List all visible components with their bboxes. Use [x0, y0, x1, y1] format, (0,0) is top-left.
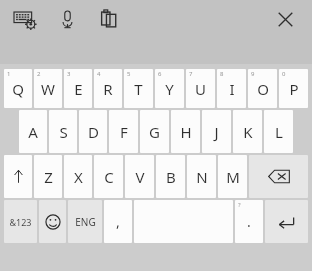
button[interactable]: N — [187, 155, 216, 198]
button[interactable]: &123 — [4, 200, 37, 243]
button[interactable]: Voice input — [54, 7, 80, 31]
staticText: C — [104, 167, 114, 187]
staticText: 4 — [97, 70, 101, 78]
staticText: ENG — [75, 215, 96, 229]
button[interactable]: Enter — [265, 200, 308, 243]
button[interactable]: M — [218, 155, 247, 198]
button[interactable]: Clipboard — [96, 6, 122, 30]
staticText: K — [243, 122, 253, 142]
staticText: 2 — [37, 70, 41, 78]
staticText: . — [247, 212, 251, 231]
staticText: V — [135, 167, 145, 187]
button[interactable]: W — [34, 69, 62, 108]
staticText: L — [275, 122, 283, 142]
staticText: M — [226, 167, 240, 187]
staticText: J — [214, 122, 219, 142]
button[interactable]: O — [248, 69, 277, 108]
button[interactable]: Keyboard settings — [10, 7, 38, 31]
staticText: Q — [12, 79, 24, 99]
button[interactable]: . — [235, 200, 263, 243]
staticText: ? — [238, 201, 241, 209]
staticText: Y — [165, 79, 174, 99]
staticText: 5 — [127, 70, 131, 78]
button[interactable]: I — [217, 69, 246, 108]
staticText: E — [74, 79, 83, 99]
button[interactable]: Shift — [4, 155, 32, 198]
button[interactable]: Emoji — [39, 200, 66, 243]
button[interactable]: P — [279, 69, 308, 108]
staticText: W — [41, 79, 55, 99]
staticText: Z — [44, 167, 53, 187]
staticText: T — [134, 79, 143, 99]
staticText: 1 — [7, 70, 11, 78]
button[interactable]: , — [104, 200, 132, 243]
button[interactable]: E — [64, 69, 92, 108]
button[interactable]: J — [202, 110, 231, 153]
staticText: S — [59, 122, 68, 142]
staticText: 0 — [282, 70, 286, 78]
button[interactable]: Z — [34, 155, 62, 198]
staticText: &123 — [9, 216, 32, 228]
button[interactable]: T — [124, 69, 153, 108]
button[interactable]: Y — [155, 69, 184, 108]
button[interactable]: B — [156, 155, 185, 198]
button[interactable]: S — [49, 110, 77, 153]
staticText: O — [257, 79, 269, 99]
button[interactable]: F — [109, 110, 138, 153]
staticText: P — [289, 79, 299, 99]
button[interactable]: G — [140, 110, 169, 153]
staticText: D — [88, 122, 99, 142]
staticText: U — [195, 79, 206, 99]
staticText: A — [28, 122, 38, 142]
staticText: 6 — [158, 70, 162, 78]
staticText: 3 — [67, 70, 71, 78]
staticText: B — [166, 167, 176, 187]
button[interactable]: A — [19, 110, 47, 153]
staticText: H — [180, 122, 192, 142]
button[interactable]: Q — [4, 69, 32, 108]
button[interactable]: H — [171, 110, 200, 153]
staticText: 7 — [189, 70, 193, 78]
staticText: G — [149, 122, 160, 142]
staticText: X — [74, 167, 83, 187]
button[interactable]: U — [186, 69, 215, 108]
button[interactable]: K — [233, 110, 262, 153]
button[interactable]: X — [64, 155, 92, 198]
staticText: I — [229, 79, 235, 99]
button[interactable]: D — [79, 110, 107, 153]
button[interactable]: L — [264, 110, 293, 153]
button[interactable]: R — [94, 69, 122, 108]
staticText: F — [120, 122, 128, 142]
button[interactable]: ENG — [68, 200, 102, 243]
button[interactable]: Backspace — [249, 155, 308, 198]
staticText: , — [116, 212, 120, 231]
staticText: N — [196, 167, 208, 187]
button[interactable]: Close keyboard — [272, 7, 298, 31]
button[interactable]: V — [125, 155, 154, 198]
staticText: 9 — [251, 70, 255, 78]
staticText: 8 — [220, 70, 224, 78]
button[interactable]: C — [94, 155, 123, 198]
staticText: R — [103, 79, 113, 99]
